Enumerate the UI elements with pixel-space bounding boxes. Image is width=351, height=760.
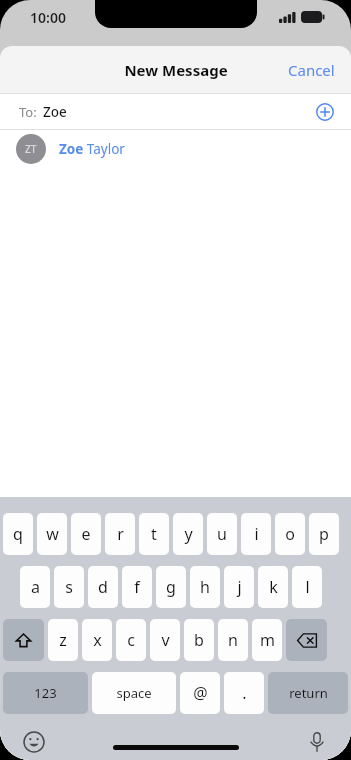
- staticText: c: [127, 629, 135, 651]
- button[interactable]: a: [20, 566, 50, 608]
- button[interactable]: v: [150, 619, 180, 661]
- staticText: @: [193, 682, 208, 704]
- button[interactable]: c: [116, 619, 146, 661]
- button[interactable]: Add contact: [311, 98, 339, 126]
- staticText: n: [228, 629, 238, 651]
- button[interactable]: w: [37, 513, 67, 555]
- staticText: Cancel: [288, 60, 335, 80]
- staticText: 123: [34, 684, 57, 702]
- staticText: t: [151, 523, 157, 545]
- button[interactable]: h: [190, 566, 220, 608]
- staticText: Zoe Taylor: [59, 140, 125, 158]
- button[interactable]: d: [88, 566, 118, 608]
- staticText: To:: [19, 103, 37, 121]
- button[interactable]: z: [48, 619, 78, 661]
- button[interactable]: t: [139, 513, 169, 555]
- button[interactable]: Cancel: [272, 50, 351, 90]
- button[interactable]: Backspace: [286, 619, 327, 661]
- staticText: ZT: [25, 142, 37, 156]
- button[interactable]: k: [258, 566, 288, 608]
- staticText: a: [31, 576, 40, 598]
- button[interactable]: Emoji: [18, 726, 50, 758]
- button[interactable]: f: [122, 566, 152, 608]
- button[interactable]: 123: [3, 672, 88, 714]
- staticText: h: [200, 576, 210, 598]
- button[interactable]: .: [224, 672, 264, 714]
- button[interactable]: b: [184, 619, 214, 661]
- button[interactable]: o: [275, 513, 305, 555]
- staticText: z: [59, 629, 67, 651]
- staticText: .: [242, 682, 247, 704]
- staticText: m: [260, 629, 275, 651]
- button[interactable]: j: [224, 566, 254, 608]
- staticText: 10:00: [30, 8, 66, 27]
- staticText: New Message: [124, 60, 228, 80]
- staticText: i: [254, 523, 259, 545]
- staticText: space: [116, 684, 152, 702]
- button[interactable]: @: [180, 672, 220, 714]
- staticText: v: [161, 629, 170, 651]
- staticText: l: [305, 576, 310, 598]
- staticText: j: [237, 576, 242, 598]
- button[interactable]: Dictation: [301, 726, 333, 758]
- button[interactable]: To:: [0, 94, 351, 129]
- button[interactable]: Shift: [3, 619, 44, 661]
- staticText: d: [98, 576, 108, 598]
- button[interactable]: e: [71, 513, 101, 555]
- button[interactable]: m: [252, 619, 282, 661]
- staticText: e: [81, 523, 91, 545]
- button[interactable]: s: [54, 566, 84, 608]
- staticText: k: [269, 576, 278, 598]
- button[interactable]: q: [3, 513, 33, 555]
- button[interactable]: n: [218, 619, 248, 661]
- staticText: u: [217, 523, 227, 545]
- button[interactable]: ZT: [0, 130, 351, 168]
- button[interactable]: space: [92, 672, 176, 714]
- staticText: return: [289, 684, 328, 702]
- button[interactable]: l: [292, 566, 322, 608]
- staticText: q: [13, 523, 23, 545]
- staticText: f: [134, 576, 140, 598]
- button[interactable]: p: [309, 513, 339, 555]
- staticText: w: [46, 523, 59, 545]
- staticText: x: [93, 629, 102, 651]
- staticText: o: [285, 523, 295, 545]
- button[interactable]: return: [268, 672, 348, 714]
- button[interactable]: i: [241, 513, 271, 555]
- button[interactable]: g: [156, 566, 186, 608]
- staticText: r: [117, 523, 124, 545]
- staticText: y: [184, 523, 193, 545]
- staticText: s: [65, 576, 73, 598]
- staticText: g: [166, 576, 176, 598]
- button[interactable]: r: [105, 513, 135, 555]
- staticText: p: [319, 523, 329, 545]
- button[interactable]: x: [82, 619, 112, 661]
- button[interactable]: y: [173, 513, 203, 555]
- staticText: Zoe: [43, 103, 67, 121]
- staticText: b: [194, 629, 204, 651]
- button[interactable]: u: [207, 513, 237, 555]
